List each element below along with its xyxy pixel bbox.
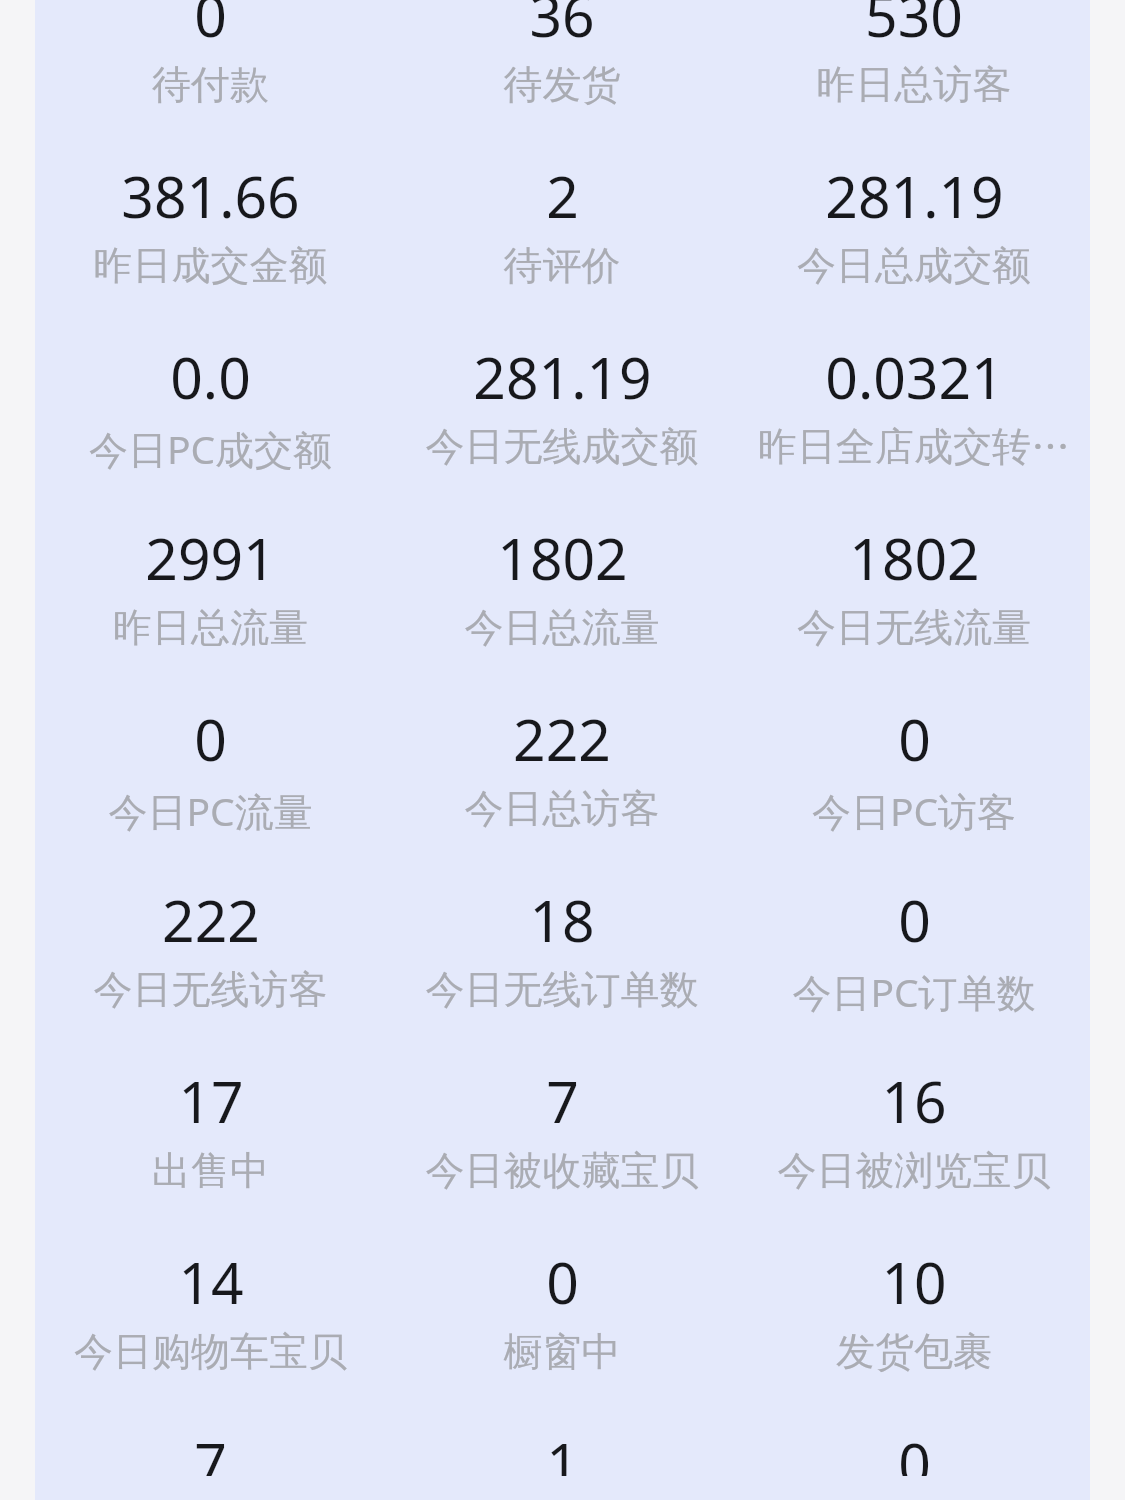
staticText: 发货包裹 bbox=[740, 1327, 1088, 1376]
staticText: 18 bbox=[529, 881, 595, 945]
button[interactable]: 222 bbox=[386, 700, 738, 881]
staticText: 今日被浏览宝贝 bbox=[740, 1146, 1088, 1195]
staticText: 0 bbox=[898, 1424, 931, 1476]
staticText: 10 bbox=[881, 1243, 947, 1307]
button[interactable]: 1802 bbox=[738, 519, 1090, 700]
button[interactable]: 530 bbox=[738, 0, 1090, 157]
staticText: 待付款 bbox=[37, 60, 384, 109]
staticText: 2 bbox=[546, 157, 579, 221]
staticText: 222 bbox=[513, 700, 611, 764]
staticText: 0 bbox=[898, 700, 931, 764]
button[interactable]: 0 bbox=[35, 0, 386, 157]
button[interactable]: 381.66 bbox=[35, 157, 386, 338]
button[interactable]: 2 bbox=[386, 157, 738, 338]
staticText: 7 bbox=[546, 1062, 579, 1126]
staticText: 281.19 bbox=[473, 338, 652, 402]
staticText: 今日无线订单数 bbox=[388, 965, 736, 1014]
staticText: 222 bbox=[162, 881, 260, 945]
button[interactable]: 7 bbox=[35, 1424, 386, 1476]
button[interactable]: 2991 bbox=[35, 519, 386, 700]
staticText: 今日无线访客 bbox=[37, 965, 384, 1014]
button[interactable]: 281.19 bbox=[738, 157, 1090, 338]
button[interactable]: 0 bbox=[386, 1243, 738, 1424]
button[interactable]: 281.19 bbox=[386, 338, 738, 519]
staticText: 今日PC订单数 bbox=[740, 965, 1088, 1018]
button[interactable]: 17 bbox=[35, 1062, 386, 1243]
staticText: 0 bbox=[546, 1243, 579, 1307]
staticText: 今日PC成交额 bbox=[37, 422, 384, 475]
staticText: 橱窗中 bbox=[388, 1327, 736, 1376]
staticText: 281.19 bbox=[825, 157, 1004, 221]
staticText: 今日总流量 bbox=[388, 603, 736, 652]
button[interactable]: 0 bbox=[35, 700, 386, 881]
staticText: 待发货 bbox=[388, 60, 736, 109]
staticText: 530 bbox=[865, 0, 963, 40]
button[interactable]: 0 bbox=[738, 881, 1090, 1062]
button[interactable]: 7 bbox=[386, 1062, 738, 1243]
staticText: 今日被收藏宝贝 bbox=[388, 1146, 736, 1195]
staticText: 0.0 bbox=[170, 338, 251, 402]
staticText: 0 bbox=[194, 0, 227, 40]
button[interactable]: 36 bbox=[386, 0, 738, 157]
staticText: 2991 bbox=[145, 519, 276, 583]
button[interactable]: 18 bbox=[386, 881, 738, 1062]
staticText: 今日PC访客 bbox=[740, 784, 1088, 837]
staticText: 今日PC流量 bbox=[37, 784, 384, 837]
staticText: 17 bbox=[178, 1062, 244, 1126]
staticText: 今日总访客 bbox=[388, 784, 736, 833]
button[interactable]: 14 bbox=[35, 1243, 386, 1424]
staticText: 16 bbox=[881, 1062, 947, 1126]
staticText: 0 bbox=[194, 700, 227, 764]
button[interactable]: 222 bbox=[35, 881, 386, 1062]
button[interactable]: 0 bbox=[738, 700, 1090, 881]
staticText: 1802 bbox=[849, 519, 980, 583]
button[interactable]: 16 bbox=[738, 1062, 1090, 1243]
staticText: 0.0321 bbox=[825, 338, 1004, 402]
staticText: 昨日成交金额 bbox=[37, 241, 384, 290]
staticText: 昨日全店成交转化率 bbox=[740, 422, 1088, 471]
staticText: 0 bbox=[898, 881, 931, 945]
staticText: 待评价 bbox=[388, 241, 736, 290]
staticText: 今日无线流量 bbox=[740, 603, 1088, 652]
staticText: 381.66 bbox=[121, 157, 300, 221]
staticText: 昨日总访客 bbox=[740, 60, 1088, 109]
button[interactable]: 0.0321 bbox=[738, 338, 1090, 519]
staticText: 出售中 bbox=[37, 1146, 384, 1195]
staticText: 1802 bbox=[497, 519, 628, 583]
button[interactable]: 0 bbox=[738, 1424, 1090, 1476]
button[interactable]: 10 bbox=[738, 1243, 1090, 1424]
staticText: 今日购物车宝贝 bbox=[37, 1327, 384, 1376]
button[interactable]: 1802 bbox=[386, 519, 738, 700]
staticText: 今日总成交额 bbox=[740, 241, 1088, 290]
staticText: 7 bbox=[194, 1424, 227, 1476]
staticText: 1 bbox=[546, 1424, 579, 1476]
staticText: 36 bbox=[529, 0, 595, 40]
staticText: 昨日总流量 bbox=[37, 603, 384, 652]
staticText: 14 bbox=[178, 1243, 244, 1307]
staticText: 今日无线成交额 bbox=[388, 422, 736, 471]
button[interactable]: 0.0 bbox=[35, 338, 386, 519]
button[interactable]: 1 bbox=[386, 1424, 738, 1476]
